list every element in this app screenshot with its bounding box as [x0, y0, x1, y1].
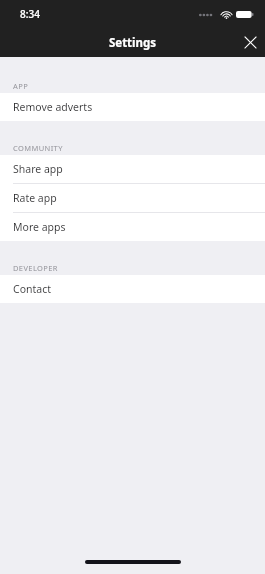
button[interactable]: Close — [236, 28, 265, 57]
staticText: More apps — [13, 220, 66, 234]
staticText: Remove adverts — [13, 100, 93, 114]
button[interactable]: Remove adverts — [0, 93, 265, 121]
staticText: Contact — [13, 282, 51, 296]
button[interactable]: More apps — [0, 213, 265, 241]
staticText: Share app — [13, 162, 63, 176]
button[interactable]: Rate app — [0, 184, 265, 212]
staticText: APP — [13, 81, 29, 91]
staticText: Settings — [0, 35, 265, 51]
staticText: Rate app — [13, 191, 57, 205]
staticText: COMMUNITY — [13, 143, 63, 153]
staticText: DEVELOPER — [13, 263, 58, 273]
staticText: 8:34 — [20, 7, 40, 21]
button[interactable]: Share app — [0, 155, 265, 183]
button[interactable]: Contact — [0, 275, 265, 303]
